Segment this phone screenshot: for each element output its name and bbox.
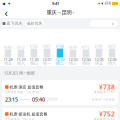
staticText: 直销机票 ¥780 — [94, 117, 115, 120]
staticText: ¥680 — [4, 46, 12, 49]
button[interactable]: ¥612 — [14, 29, 27, 65]
button[interactable]: ¥815 — [105, 29, 118, 65]
button[interactable]: ¥742 — [27, 29, 40, 65]
button[interactable]: ¥807 — [40, 29, 53, 65]
staticText: → — [56, 10, 61, 15]
staticText: ¥742 — [30, 45, 38, 48]
staticText: ▾ — [71, 11, 73, 14]
button[interactable]: ¥712 — [79, 29, 92, 65]
staticText: 23:15 — [5, 96, 18, 103]
staticText: 12月2日 周一航班 — [4, 70, 35, 76]
staticText: 周六 — [17, 61, 25, 66]
staticText: 周日 — [30, 61, 38, 66]
button[interactable]: 直飞优先 — [2, 20, 23, 27]
button[interactable]: 机票·酒店 超值套餐 — [0, 80, 120, 105]
staticText: ¥738 — [99, 83, 115, 91]
staticText: ¥815 — [108, 45, 116, 48]
staticText: 11.30 — [29, 57, 38, 62]
staticText: 周五 — [95, 61, 103, 66]
staticText: 12.03 — [68, 57, 77, 62]
staticText: ‹ — [4, 5, 7, 20]
staticText: ✦ — [7, 1, 10, 6]
staticText: 重庆 — [46, 9, 56, 16]
staticText: 46% — [105, 2, 111, 5]
staticText: ¥738 — [56, 45, 64, 48]
staticText: ¥712 — [82, 46, 90, 49]
staticText: 9:41 — [52, 1, 59, 6]
staticText: 直销机票 ¥760 — [94, 90, 115, 94]
staticText: ◀ — [2, 1, 5, 6]
button[interactable]: ¥738 — [53, 29, 66, 65]
staticText: 周四 — [82, 61, 90, 66]
staticText: 机票·酒店 超值套餐 — [9, 84, 44, 90]
staticText: 含往返接送，省心出行 — [5, 117, 35, 120]
staticText: ▼ — [101, 2, 103, 5]
staticText: 昆明 — [61, 9, 71, 16]
button[interactable]: 低价优先 — [25, 20, 44, 27]
button[interactable]: ¥690 — [66, 29, 79, 65]
staticText: ¥612 — [17, 46, 25, 49]
staticText: 05:40 — [32, 96, 45, 103]
staticText: 12.05 — [94, 57, 103, 62]
staticText: 周五 — [4, 61, 12, 66]
staticText: 11.28 — [3, 57, 12, 62]
staticText: 机票·接送机 超值套餐 — [9, 111, 48, 117]
staticText: 周六 — [108, 61, 116, 66]
staticText: ¥807 — [43, 45, 51, 48]
staticText: › — [112, 20, 114, 27]
staticText: 12.04 — [81, 57, 90, 62]
staticText: 12.01 — [42, 57, 51, 62]
staticText: ❖ — [98, 2, 100, 5]
staticText: 全程低价优惠，入住更省心 — [5, 90, 41, 94]
button[interactable]: Back — [0, 7, 12, 18]
button[interactable]: More filters — [90, 20, 118, 27]
staticText: 低价优先 — [26, 21, 42, 26]
button[interactable]: 机票·接送机 超值套餐 — [0, 108, 120, 120]
staticText: 12.02 — [55, 57, 64, 62]
staticText: ¥780 — [95, 45, 103, 48]
staticText: 开票后1小时生效 — [92, 98, 115, 101]
button[interactable]: ¥680 — [1, 29, 14, 65]
staticText: ¥752 — [99, 110, 115, 118]
staticText: ¥690 — [69, 46, 77, 49]
button[interactable]: ¥780 — [92, 29, 105, 65]
staticText: 周二 — [56, 61, 64, 66]
staticText: 2h25m — [45, 98, 57, 101]
staticText: 12.06 — [107, 57, 116, 62]
staticText: 11.29 — [16, 57, 25, 62]
staticText: 直飞优先 — [5, 21, 22, 26]
staticText: 周三 — [69, 61, 77, 66]
staticText: 周一 — [43, 61, 51, 66]
